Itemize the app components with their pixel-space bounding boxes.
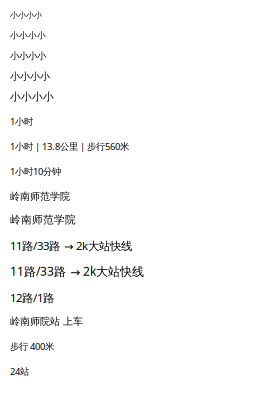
staticText: 小小小小 (10, 10, 42, 20)
staticText: 1小时 (10, 115, 33, 128)
staticText: 24站 (10, 365, 29, 378)
staticText: 小小小小 (10, 70, 50, 83)
staticText: 1小时10分钟 (10, 165, 61, 178)
staticText: 岭南师院站 上车 (10, 315, 83, 328)
staticText: 11路/33路 → 2k大站快线 (10, 263, 144, 279)
staticText: 小小小小 (10, 50, 46, 62)
staticText: 小小小小 (10, 30, 46, 41)
staticText: 小小小小 (10, 90, 54, 103)
staticText: 11路/33路 → 2k大站快线 (10, 238, 132, 253)
staticText: 岭南师范学院 (10, 213, 76, 226)
staticText: 岭南师范学院 (10, 190, 70, 203)
staticText: 步行 400米 (10, 340, 54, 353)
staticText: 1小时 | 13.8公里 | 步行560米 (10, 140, 129, 153)
staticText: 12路/1路 (10, 290, 54, 305)
